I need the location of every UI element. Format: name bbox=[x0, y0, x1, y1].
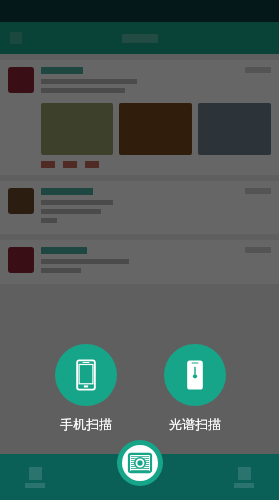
staticText: 手机扫描 bbox=[60, 416, 112, 432]
button[interactable]: Tab 1 bbox=[0, 454, 69, 500]
button[interactable]: Scan bbox=[117, 440, 163, 486]
staticText: 光谱扫描 bbox=[169, 416, 221, 432]
button[interactable]: Tab 4 bbox=[209, 454, 279, 500]
button[interactable]: Tab 3 bbox=[139, 454, 209, 500]
button[interactable]: 光谱扫描 bbox=[164, 344, 226, 432]
button[interactable]: 手机扫描 bbox=[55, 344, 117, 432]
button[interactable]: Tab 2 bbox=[69, 454, 139, 500]
